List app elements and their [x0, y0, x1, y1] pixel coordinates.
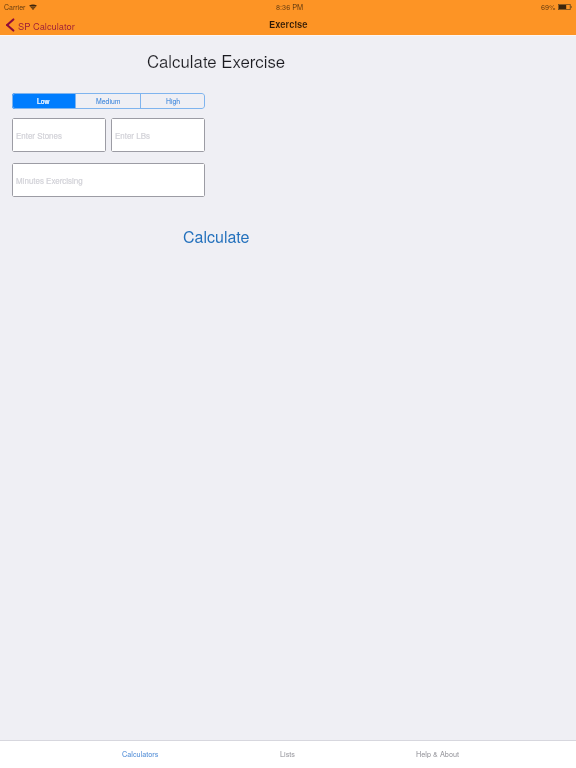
staticText: Minutes Exercising	[16, 175, 83, 186]
staticText: Calculators	[122, 749, 159, 759]
staticText: Enter Stones	[16, 130, 63, 141]
button[interactable]: Low	[12, 93, 75, 109]
other: Battery	[558, 4, 572, 10]
staticText: Lists	[280, 749, 295, 759]
button[interactable]: Help & About	[378, 740, 498, 767]
staticText: SP Calculator	[18, 19, 75, 32]
button[interactable]: Back to SP Calculator	[0, 14, 83, 36]
staticText: High	[166, 96, 181, 106]
button[interactable]: Enter Stones	[12, 118, 106, 152]
button[interactable]: Calculate	[0, 224, 432, 248]
staticText: 69%	[541, 2, 556, 12]
other: Wi-Fi	[29, 5, 37, 10]
other: Back to SP Calculator	[6, 19, 14, 31]
staticText: Carrier	[4, 2, 26, 12]
staticText: 8:36 PM	[276, 2, 304, 12]
staticText: Calculate Exercise	[0, 49, 432, 73]
button[interactable]: Lists	[227, 740, 347, 767]
staticText: Calculate	[183, 225, 250, 248]
button[interactable]: Calculators	[80, 740, 200, 767]
button[interactable]: Enter LBs	[111, 118, 205, 152]
staticText: Medium	[96, 96, 121, 106]
staticText: Enter LBs	[115, 130, 151, 141]
button[interactable]: Medium	[76, 93, 140, 109]
staticText: Exercise	[269, 17, 308, 30]
staticText: Help & About	[416, 749, 460, 759]
button[interactable]: High	[141, 93, 205, 109]
button[interactable]: Minutes Exercising	[12, 163, 205, 197]
staticText: Low	[37, 96, 50, 106]
